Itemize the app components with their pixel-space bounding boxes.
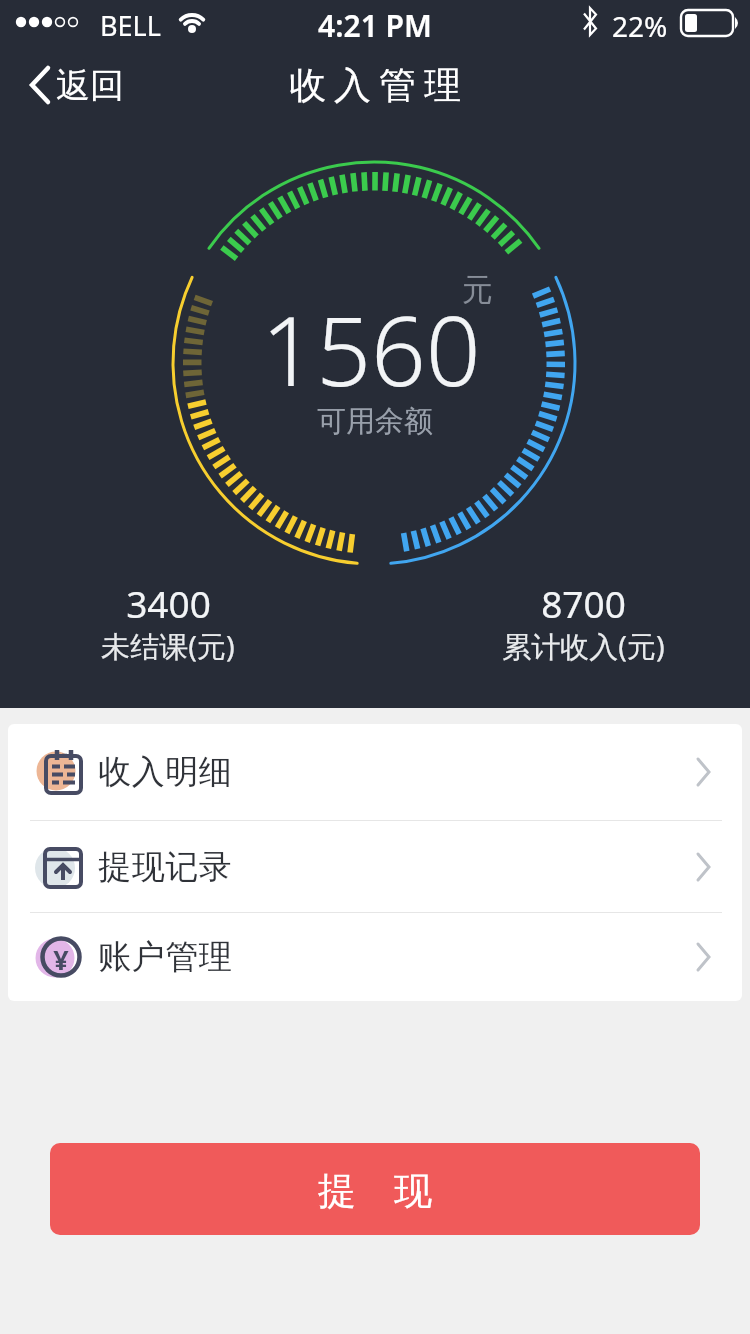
staticText: 收入明细	[98, 751, 232, 793]
button[interactable]: 收入明细	[8, 724, 742, 820]
staticText: 返回	[56, 64, 124, 107]
button[interactable]: ¥	[8, 913, 742, 1001]
staticText: 提现记录	[98, 846, 232, 888]
staticText: 1560	[261, 283, 481, 414]
staticText: 元	[462, 270, 493, 309]
button[interactable]: 返回	[28, 45, 124, 125]
staticText: 账户管理	[98, 936, 232, 978]
staticText: 可用余额	[317, 403, 433, 440]
staticText: BELL	[100, 7, 161, 44]
staticText: 未结课(元)	[101, 626, 235, 666]
staticText: 8700	[541, 578, 626, 628]
button[interactable]: 提现记录	[8, 821, 742, 912]
staticText: 累计收入(元)	[502, 626, 665, 666]
staticText: 提 现	[318, 1163, 432, 1215]
staticText: ¥	[53, 941, 69, 978]
staticText: 4:21 PM	[318, 5, 432, 46]
button[interactable]: 提 现	[50, 1143, 700, 1235]
staticText: 3400	[126, 578, 211, 628]
staticText: 收入管理	[285, 62, 465, 109]
staticText: 22%	[612, 7, 668, 45]
